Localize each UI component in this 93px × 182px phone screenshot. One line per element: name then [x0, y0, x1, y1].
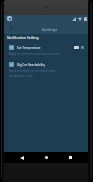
staticText: Notification Setting	[7, 35, 39, 39]
staticText: Settings	[42, 27, 58, 32]
staticText: Shock and notify me periodically when un…	[9, 69, 56, 78]
button[interactable]: Recent apps	[66, 153, 75, 162]
staticText: Notify me when the temperature exceeds	[9, 52, 60, 56]
staticText: Big Car Reachability	[17, 63, 45, 67]
staticText: Ear Temperature	[17, 46, 41, 50]
button[interactable]: Back	[17, 153, 26, 162]
button[interactable]: Ear Temperature	[4, 45, 88, 56]
button[interactable]: Navigate up	[7, 24, 16, 33]
button[interactable]: Home	[42, 153, 51, 162]
button[interactable]: Big Car Reachability	[4, 62, 88, 78]
